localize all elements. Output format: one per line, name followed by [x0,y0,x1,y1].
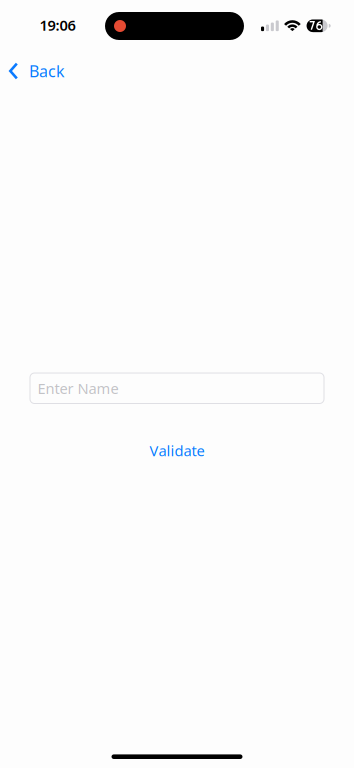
staticText: 19:06 [39,15,75,35]
staticText: Enter Name [37,378,118,398]
button[interactable]: Validate [135,439,218,461]
staticText: Validate [149,441,204,460]
textField[interactable]: Enter Name [30,373,324,403]
button[interactable]: Back [0,52,75,90]
staticText: Back [29,60,65,82]
